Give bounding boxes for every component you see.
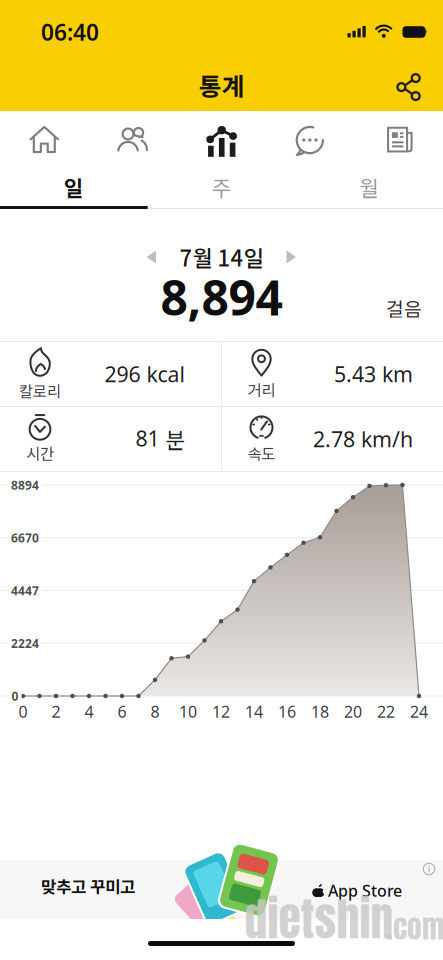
staticText: 일 — [64, 172, 84, 202]
button[interactable]: 다음 날짜 — [286, 250, 296, 263]
staticText: 칼로리 — [19, 379, 61, 402]
staticText: 22 — [377, 701, 395, 722]
staticText: App Store — [328, 880, 402, 901]
staticText: 0 — [11, 688, 18, 704]
staticText: 14 — [245, 701, 263, 722]
staticText: 맞추고 꾸미고 — [41, 874, 135, 898]
staticText: 6 — [117, 701, 126, 722]
staticText: 월 — [359, 172, 379, 202]
button[interactable]: 일 — [0, 168, 148, 206]
staticText: 시간 — [26, 442, 54, 464]
staticText: 7월 14일 — [179, 241, 263, 273]
staticText: 10 — [179, 701, 197, 722]
staticText: 24 — [410, 701, 428, 722]
staticText: 4447 — [11, 582, 39, 598]
staticText: 4 — [84, 701, 93, 722]
staticText: 20 — [344, 701, 362, 722]
staticText: 2.78 km/h — [313, 424, 413, 454]
staticText: 2 — [51, 701, 60, 722]
staticText: 8,894 — [160, 265, 282, 329]
staticText: 8 — [150, 701, 159, 722]
button[interactable]: 홈 — [0, 111, 89, 168]
staticText: 6670 — [11, 530, 39, 546]
staticText: 2224 — [11, 635, 39, 651]
staticText: 18 — [311, 701, 329, 722]
staticText: 81 분 — [135, 424, 185, 454]
staticText: 거리 — [247, 378, 275, 401]
button[interactable]: 이전 날짜 — [146, 250, 156, 263]
staticText: .com — [386, 905, 443, 949]
button[interactable]: 친구 — [89, 111, 177, 168]
button[interactable]: 뉴스 — [354, 111, 443, 168]
button[interactable]: 주 — [148, 168, 295, 206]
staticText: 06:40 — [41, 17, 99, 47]
staticText: dietshin — [244, 885, 393, 953]
button[interactable]: 통계 — [177, 111, 266, 168]
staticText: 12 — [212, 701, 230, 722]
staticText: 296 kcal — [104, 359, 185, 389]
staticText: 걸음 — [386, 294, 422, 322]
staticText: 주 — [211, 172, 231, 202]
staticText: 0 — [18, 701, 27, 722]
button[interactable]: 월 — [295, 168, 443, 206]
button[interactable]: 채팅 — [266, 111, 354, 168]
staticText: 통계 — [198, 67, 244, 103]
staticText: 16 — [278, 701, 296, 722]
button[interactable]: 공유 — [387, 65, 431, 109]
button[interactable]: 광고: 맞추고 꾸미고 - App Store — [0, 860, 443, 919]
staticText: 5.43 km — [334, 359, 413, 389]
staticText: 8894 — [11, 477, 39, 493]
staticText: 속도 — [247, 442, 275, 464]
